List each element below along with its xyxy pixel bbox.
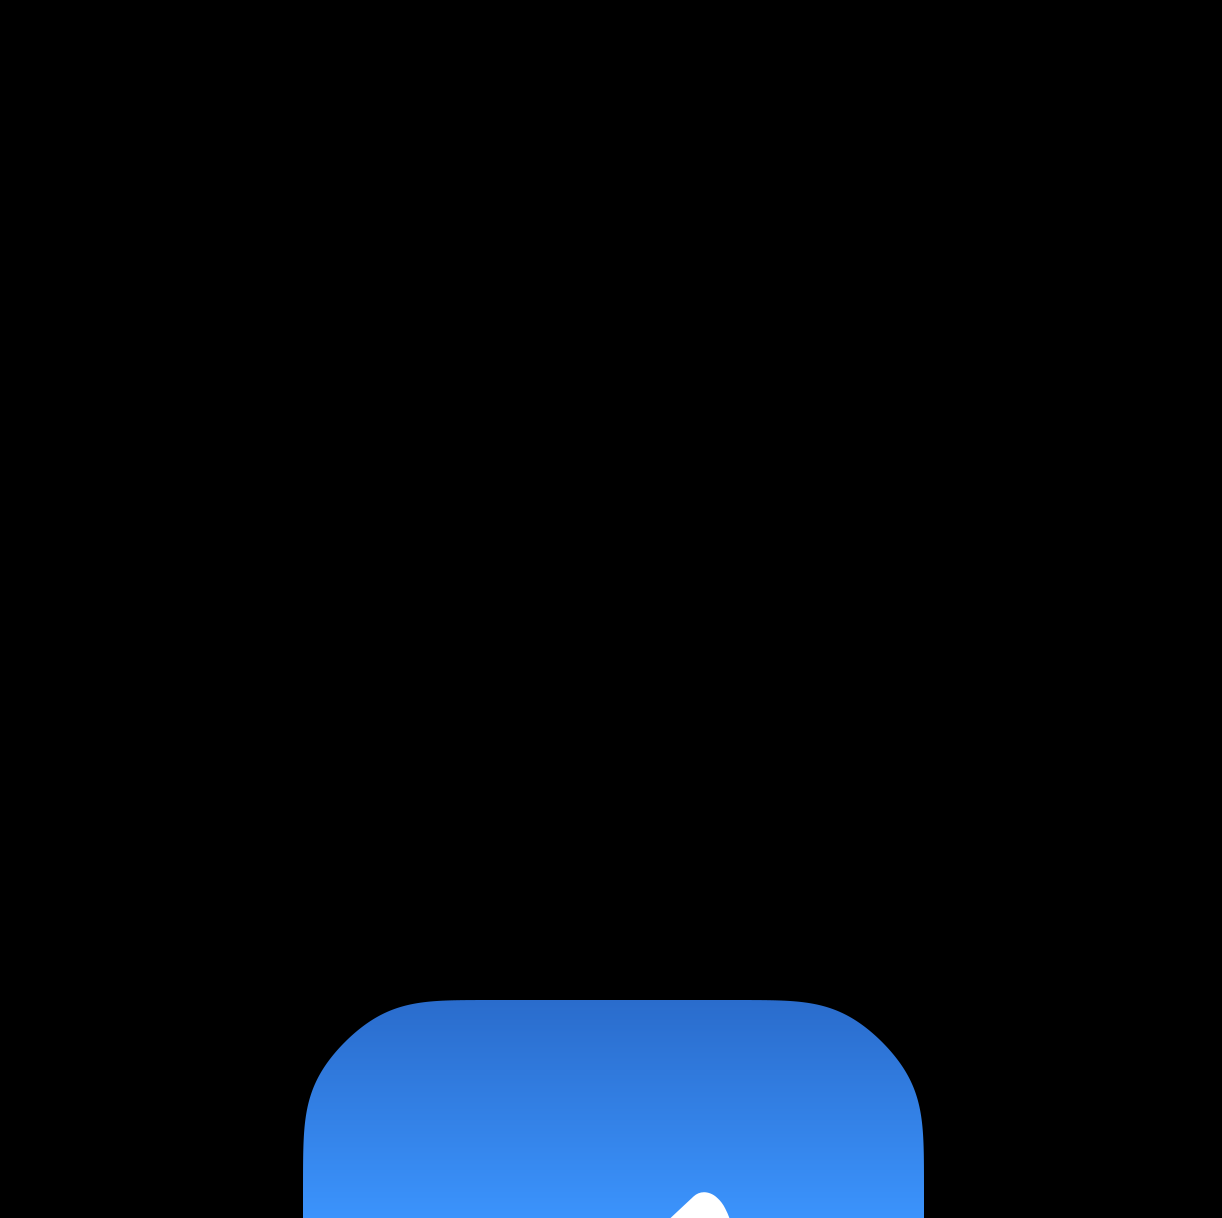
button[interactable]: Open app: [303, 1000, 924, 1218]
